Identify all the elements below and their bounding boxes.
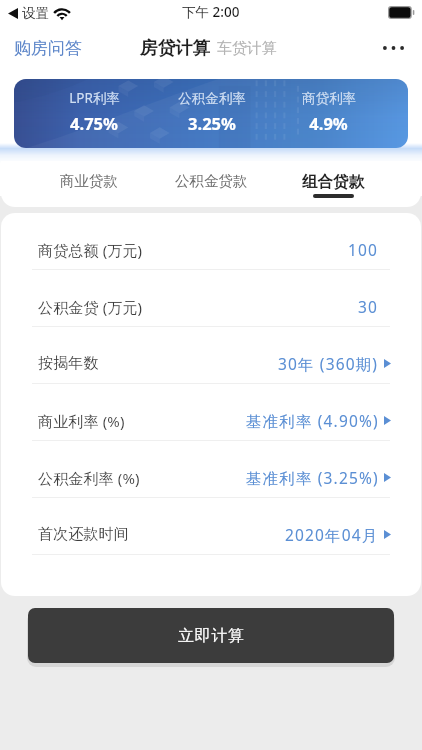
button[interactable]: LPR利率: [14, 79, 408, 148]
button[interactable]: 商业贷款: [28, 161, 150, 207]
button[interactable]: 公积金利率 (%): [1, 441, 421, 498]
staticText: 按揭年数: [38, 354, 99, 373]
staticText: LPR利率: [69, 89, 120, 107]
button[interactable]: 按揭年数: [1, 327, 421, 384]
button[interactable]: More options: [371, 36, 422, 60]
staticText: 商业贷款: [60, 172, 118, 190]
staticText: 2020年04月: [285, 524, 379, 545]
button[interactable]: 首次还款时间: [1, 498, 421, 555]
staticText: 4.9%: [309, 112, 348, 134]
staticText: 基准利率 (3.25%): [246, 467, 379, 488]
staticText: 30: [358, 296, 379, 317]
staticText: 4.75%: [70, 112, 118, 134]
staticText: 组合贷款: [302, 172, 364, 192]
staticText: 公积金利率 (%): [38, 468, 140, 488]
staticText: 100: [348, 239, 379, 260]
button[interactable]: 房贷计算: [140, 29, 210, 67]
button[interactable]: 购房问答: [0, 30, 92, 67]
staticText: 公积金利率: [178, 90, 246, 107]
staticText: 立即计算: [178, 626, 245, 646]
button[interactable]: 组合贷款: [272, 161, 394, 207]
staticText: 车贷计算: [217, 39, 277, 58]
button[interactable]: 车贷计算: [217, 32, 277, 67]
button[interactable]: 立即计算: [28, 608, 394, 663]
staticText: 房贷计算: [140, 37, 210, 59]
staticText: 公积金贷 (万元): [38, 297, 143, 317]
staticText: 首次还款时间: [38, 525, 129, 544]
button[interactable]: 公积金贷款: [150, 161, 272, 207]
staticText: 商贷总额 (万元): [38, 240, 143, 260]
button[interactable]: 商贷总额 (万元): [1, 213, 421, 270]
staticText: 基准利率 (4.90%): [246, 410, 379, 431]
button[interactable]: 商业利率 (%): [1, 384, 421, 441]
button[interactable]: 公积金贷 (万元): [1, 270, 421, 327]
staticText: 公积金贷款: [175, 172, 248, 190]
staticText: 购房问答: [14, 38, 82, 59]
staticText: 30年 (360期): [278, 353, 379, 374]
staticText: 设置: [22, 5, 49, 22]
staticText: 商贷利率: [302, 90, 356, 107]
staticText: 下午 2:00: [182, 3, 240, 21]
staticText: 商业利率 (%): [38, 411, 125, 431]
staticText: 3.25%: [188, 112, 236, 134]
